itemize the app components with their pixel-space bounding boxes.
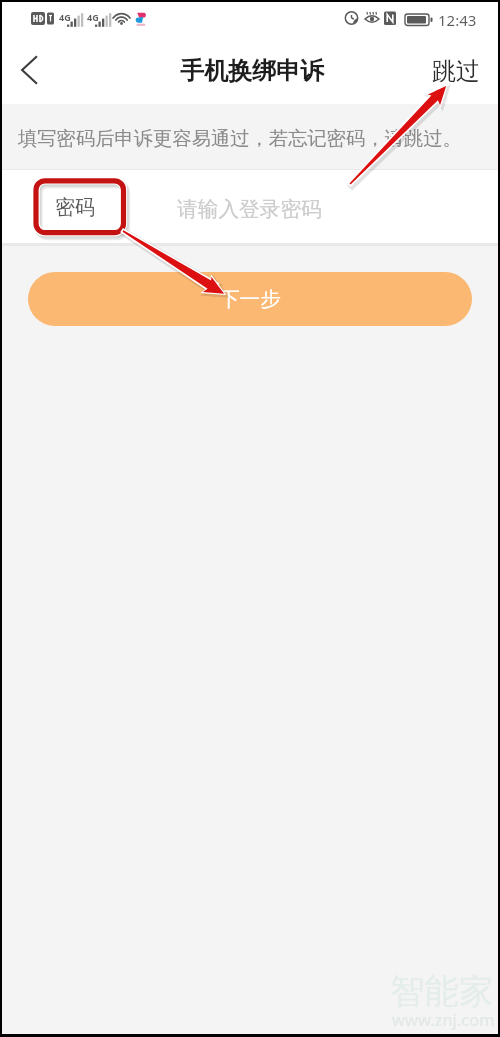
staticText: 跳过: [432, 56, 480, 86]
button[interactable]: Back: [6, 42, 62, 98]
staticText: www.znj.com: [392, 1008, 495, 1030]
staticText: 4G: [87, 11, 99, 23]
staticText: 手机换绑申诉: [180, 56, 324, 86]
staticText: 4G: [59, 11, 71, 23]
button[interactable]: 下一步: [28, 272, 472, 326]
button[interactable]: 跳过: [408, 42, 498, 100]
staticText: 填写密码后申诉更容易通过，若忘记密码，请跳过。: [18, 126, 462, 150]
staticText: 12:43: [438, 10, 477, 30]
staticText: 密码: [55, 195, 95, 220]
staticText: 下一步: [219, 286, 281, 312]
staticText: 请输入登录密码: [177, 196, 322, 222]
staticText: 智能家: [390, 970, 494, 1013]
